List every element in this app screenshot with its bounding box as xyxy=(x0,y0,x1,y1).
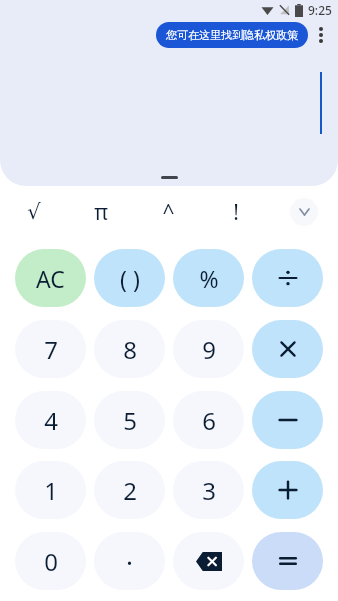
button[interactable]: 1 xyxy=(15,461,86,519)
staticText: AC xyxy=(36,263,65,294)
staticText: 5 xyxy=(123,404,137,437)
button[interactable]: Equals xyxy=(252,532,323,590)
staticText: 9:25 xyxy=(308,2,332,18)
button[interactable]: 9 xyxy=(173,320,244,378)
button[interactable]: Plus xyxy=(252,461,323,519)
staticText: 3 xyxy=(202,474,216,507)
button[interactable]: Divide xyxy=(252,249,323,307)
staticText: π xyxy=(94,198,108,227)
button[interactable]: ^ xyxy=(134,186,202,238)
button[interactable]: Backspace xyxy=(173,532,244,590)
button[interactable]: Expand functions xyxy=(290,198,318,226)
button[interactable] xyxy=(161,176,178,179)
staticText: % xyxy=(199,263,219,294)
staticText: 8 xyxy=(123,333,137,366)
staticText: 6 xyxy=(202,404,216,437)
button[interactable]: · xyxy=(94,532,165,590)
button[interactable]: 5 xyxy=(94,391,165,449)
staticText: · xyxy=(126,544,133,579)
button[interactable]: Multiply xyxy=(252,320,323,378)
staticText: 2 xyxy=(123,474,137,507)
button[interactable]: π xyxy=(67,186,134,238)
staticText: 7 xyxy=(44,333,58,366)
staticText: 1 xyxy=(44,474,58,507)
button[interactable]: More options xyxy=(308,22,334,48)
staticText: ^ xyxy=(162,198,175,227)
staticText: √ xyxy=(27,200,41,224)
staticText: 4 xyxy=(44,404,58,437)
button[interactable]: 4 xyxy=(15,391,86,449)
button[interactable]: 8 xyxy=(94,320,165,378)
staticText: ! xyxy=(233,198,239,227)
button[interactable]: √ xyxy=(0,186,67,238)
staticText: 0 xyxy=(44,545,58,578)
button[interactable]: 7 xyxy=(15,320,86,378)
button[interactable]: AC xyxy=(15,249,86,307)
button[interactable]: 3 xyxy=(173,461,244,519)
staticText: 9 xyxy=(202,333,216,366)
button[interactable]: Minus xyxy=(252,391,323,449)
staticText: ( ) xyxy=(120,263,140,294)
button[interactable]: ! xyxy=(202,186,270,238)
button[interactable]: 2 xyxy=(94,461,165,519)
staticText: 您可在这里找到隐私权政策 xyxy=(166,28,298,42)
button[interactable]: 您可在这里找到隐私权政策 xyxy=(156,22,308,48)
button[interactable]: 6 xyxy=(173,391,244,449)
button[interactable]: 0 xyxy=(15,532,86,590)
button[interactable]: ( ) xyxy=(94,249,165,307)
button[interactable]: % xyxy=(173,249,244,307)
